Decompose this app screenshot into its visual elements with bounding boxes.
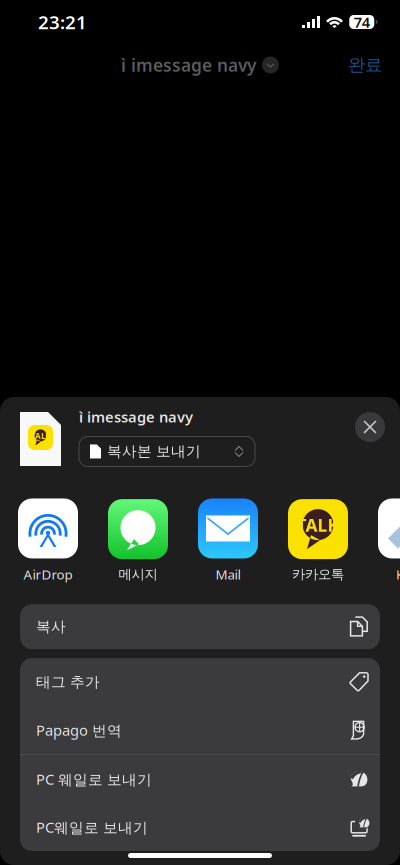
staticText: PC 웨일로 보내기 [36, 769, 152, 789]
button[interactable]: AirDrop [18, 498, 78, 583]
staticText: Kno [396, 565, 400, 583]
staticText: TALK [31, 431, 50, 441]
button[interactable]: 메시지 [108, 499, 168, 582]
button[interactable]: PC웨일로 보내기 [20, 803, 380, 851]
button[interactable]: Mail [198, 498, 258, 583]
staticText: TALK [296, 514, 339, 537]
staticText: 완료 [348, 54, 382, 76]
button[interactable]: 닫기 [349, 412, 391, 454]
staticText: 복사 [36, 618, 66, 636]
staticText: 태그 추가 [36, 673, 100, 691]
staticText: 74 [354, 12, 370, 32]
button[interactable]: 태그 추가 [20, 658, 380, 706]
button[interactable]: 완료 [338, 46, 392, 84]
staticText: ì imessage navy [79, 407, 193, 426]
button[interactable]: PC 웨일로 보내기 [20, 755, 380, 803]
staticText: ì imessage navy [121, 53, 256, 76]
staticText: Mail [215, 565, 240, 583]
staticText: 23:21 [38, 10, 87, 34]
staticText: PC웨일로 보내기 [36, 817, 148, 837]
button[interactable]: Papago 번역 [20, 706, 380, 754]
button[interactable]: Kno [378, 498, 400, 583]
staticText: AirDrop [23, 565, 72, 583]
button[interactable]: 복사본 보내기 [79, 436, 255, 466]
button[interactable]: 복사 [20, 604, 380, 649]
staticText: 메시지 [118, 566, 157, 582]
staticText: 카카오톡 [292, 566, 344, 582]
staticText: 복사본 보내기 [107, 442, 201, 460]
staticText: Papago 번역 [36, 720, 122, 740]
button[interactable]: TALK [288, 499, 348, 582]
